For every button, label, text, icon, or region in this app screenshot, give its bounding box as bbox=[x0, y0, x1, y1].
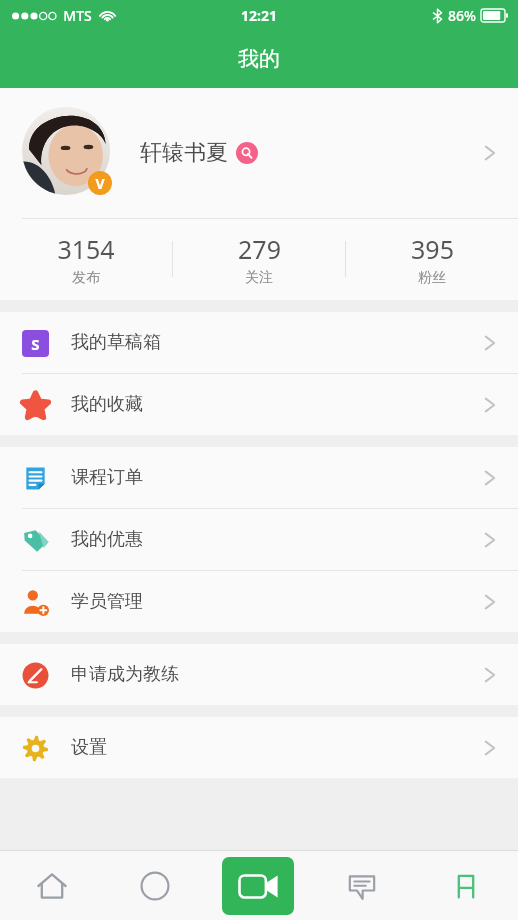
button[interactable]: Discover bbox=[103, 851, 206, 920]
staticText: 设置 bbox=[71, 736, 107, 759]
staticText: V bbox=[95, 174, 105, 193]
staticText: 我的草稿箱 bbox=[71, 331, 161, 354]
button[interactable]: 学员管理 bbox=[0, 571, 518, 632]
staticText: 我的 bbox=[238, 46, 280, 72]
staticText: 279 bbox=[238, 232, 281, 266]
button[interactable]: 申请成为教练 bbox=[0, 644, 518, 705]
button[interactable]: 我的收藏 bbox=[0, 374, 518, 435]
staticText: 轩辕书夏 bbox=[140, 139, 228, 167]
button[interactable]: 3154 bbox=[0, 218, 172, 300]
button[interactable]: Home bbox=[0, 851, 103, 920]
button[interactable]: V bbox=[0, 88, 518, 218]
staticText: 发布 bbox=[72, 269, 100, 287]
button[interactable]: Messages bbox=[310, 851, 414, 920]
button[interactable]: Record video bbox=[206, 851, 310, 920]
staticText: 我的收藏 bbox=[71, 393, 143, 416]
button[interactable]: S bbox=[0, 312, 518, 373]
staticText: S bbox=[31, 334, 40, 354]
button[interactable]: Profile bbox=[414, 851, 518, 920]
staticText: 395 bbox=[411, 232, 454, 266]
staticText: 12:21 bbox=[241, 6, 277, 25]
staticText: 我的优惠 bbox=[71, 528, 143, 551]
button[interactable]: 我的优惠 bbox=[0, 509, 518, 570]
staticText: 课程订单 bbox=[71, 466, 143, 489]
staticText: 3154 bbox=[57, 232, 115, 266]
button[interactable]: 课程订单 bbox=[0, 447, 518, 508]
staticText: MTS bbox=[63, 6, 92, 25]
staticText: 学员管理 bbox=[71, 590, 143, 613]
staticText: 关注 bbox=[245, 269, 273, 287]
staticText: 申请成为教练 bbox=[71, 663, 179, 686]
button[interactable]: 设置 bbox=[0, 717, 518, 778]
staticText: 粉丝 bbox=[418, 269, 446, 287]
button[interactable]: 395 bbox=[346, 218, 518, 300]
button[interactable]: 279 bbox=[173, 218, 345, 300]
staticText: 86% bbox=[448, 6, 476, 25]
